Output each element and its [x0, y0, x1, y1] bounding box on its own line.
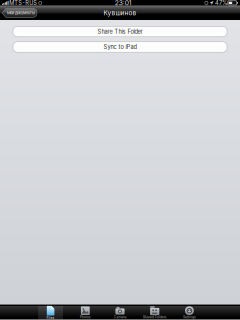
staticText: 47% [215, 0, 227, 6]
staticText: Camera [113, 315, 126, 319]
staticText: Files [47, 316, 55, 320]
button[interactable]: Share This Folder [13, 26, 227, 37]
staticText: Settings [183, 315, 196, 319]
staticText: Кувшинов [103, 9, 136, 17]
button[interactable]: Photos [68, 306, 103, 320]
staticText: Sync to iPad [103, 44, 136, 50]
button[interactable]: Camera [103, 306, 137, 320]
button[interactable]: Sync to iPad [13, 42, 227, 52]
staticText: Share This Folder [97, 28, 142, 35]
staticText: Мои документы [7, 11, 35, 15]
staticText: Photos [80, 315, 91, 319]
staticText: 23:01 [115, 0, 132, 7]
staticText: MTS-RUS [9, 0, 37, 6]
button[interactable]: Files [33, 306, 68, 320]
button[interactable]: Мои документы [2, 6, 37, 20]
button[interactable]: Settings [172, 306, 207, 320]
button[interactable]: Shared Folders [137, 306, 172, 320]
staticText: Shared Folders [143, 315, 167, 319]
